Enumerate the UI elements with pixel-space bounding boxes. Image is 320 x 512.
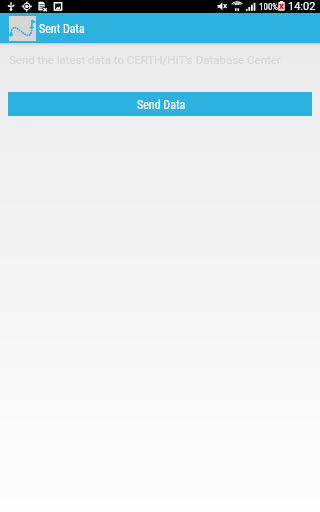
button[interactable]: App icon <box>9 16 36 41</box>
button[interactable]: Send Data <box>8 92 312 116</box>
staticText: Sent Data <box>39 22 85 36</box>
staticText: 100% <box>259 2 279 13</box>
staticText: Send Data <box>137 98 186 112</box>
staticText: 14:02 <box>288 0 316 13</box>
staticText: Send the latest data to CERTH/HIT's Data… <box>9 53 281 66</box>
